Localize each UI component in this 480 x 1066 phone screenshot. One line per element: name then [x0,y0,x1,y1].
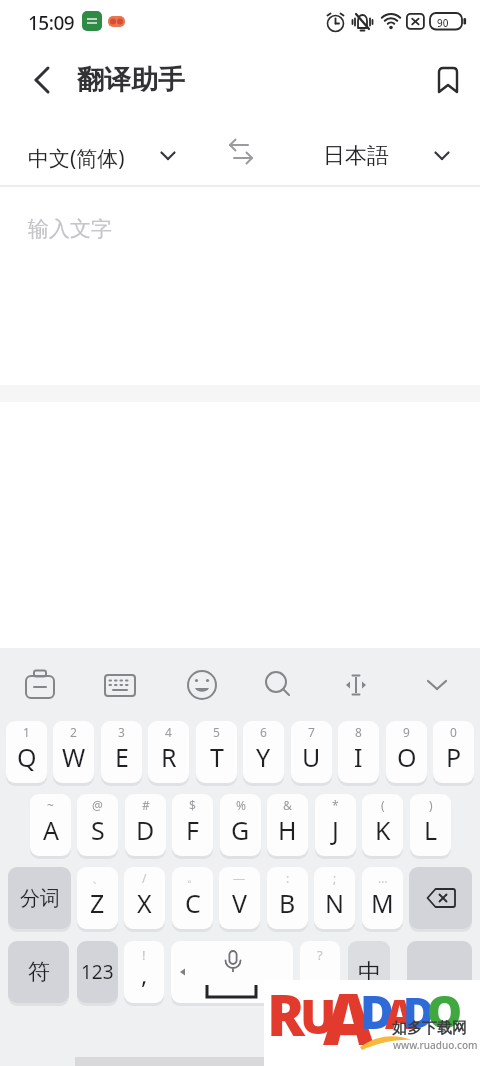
staticText: 9 [403,724,410,740]
button[interactable]: 0 [433,721,474,783]
staticText: 6 [260,724,267,740]
staticText: 123 [81,959,114,985]
button[interactable]: ; [314,867,355,929]
staticText: 15:09 [28,10,75,36]
button[interactable]: # [125,794,166,856]
staticText: — [233,870,246,886]
button[interactable]: ) [410,794,451,856]
staticText: A [323,970,374,1056]
staticText: A [43,813,59,847]
staticText: ? [317,946,323,964]
staticText: 7 [308,724,315,740]
staticText: V [232,886,248,920]
staticText: & [283,797,292,813]
button[interactable]: / [124,867,165,929]
button[interactable]: 4 [148,721,189,783]
staticText: 8 [355,724,362,740]
staticText: 输入文字 [28,216,112,242]
staticText: 2 [70,724,77,740]
staticText: ! [142,946,146,964]
staticText: 中文(简体) [28,144,125,173]
staticText: ; [333,870,337,886]
staticText: O [397,740,417,774]
staticText: S [91,813,105,847]
staticText: T [210,740,224,774]
staticText: K [375,813,391,847]
staticText: 5 [213,724,220,740]
button[interactable] [407,941,472,1003]
staticText: R [267,976,305,1052]
staticText: U [300,983,337,1048]
staticText: … [378,870,388,886]
staticText: 符 [28,958,50,986]
staticText: Y [256,740,271,774]
staticText: ) [429,797,433,813]
button[interactable]: 2 [53,721,94,783]
button[interactable]: 3 [101,721,142,783]
button[interactable]: 分词 [8,867,71,929]
staticText: % [236,797,246,813]
button[interactable]: 5 [196,721,237,783]
button[interactable] [103,667,137,703]
staticText: D [360,980,394,1043]
staticText: I [354,740,363,774]
staticText: 日本語 [323,142,389,170]
button[interactable] [185,667,219,703]
button[interactable]: ~ [30,794,71,856]
button[interactable]: ? [300,941,340,1003]
button[interactable] [409,867,472,929]
button[interactable] [430,60,466,100]
button[interactable]: 日本語 [300,128,480,180]
button[interactable]: 1 [6,721,47,783]
staticText: / [142,870,147,886]
staticText: ~ [47,797,54,813]
button[interactable]: 6 [243,721,284,783]
button[interactable]: … [362,867,403,929]
staticText: 1 [23,724,30,740]
staticText: 、 [92,870,104,885]
staticText: 3 [118,724,125,740]
staticText: J [332,813,339,847]
staticText: 如多下载网 [392,1019,467,1038]
staticText: 中 [358,958,381,987]
button[interactable] [23,667,57,703]
button[interactable]: 、 [77,867,118,929]
staticText: C [185,886,201,920]
button[interactable] [261,667,295,703]
staticText: Z [90,886,105,920]
staticText: # [142,797,150,813]
button[interactable] [24,62,60,98]
staticText: R [161,740,177,774]
staticText: O [427,981,463,1041]
button[interactable]: * [315,794,356,856]
button[interactable] [171,941,293,1003]
button[interactable]: 8 [338,721,379,783]
button[interactable] [339,667,373,703]
button[interactable]: % [220,794,261,856]
staticText: 0 [450,724,457,740]
staticText: X [137,886,152,920]
button[interactable]: 。 [172,867,213,929]
staticText: U [302,740,321,774]
button[interactable]: 9 [386,721,427,783]
button[interactable]: 符 [8,941,69,1003]
staticText: $ [189,797,196,813]
staticText: G [231,813,250,847]
staticText: D [136,813,155,847]
button[interactable]: $ [172,794,213,856]
button[interactable]: 中文(简体) [0,128,220,180]
button[interactable]: 123 [77,941,118,1003]
staticText: B [279,886,296,920]
button[interactable] [222,134,262,174]
staticText: W [62,740,86,774]
button[interactable] [420,667,454,703]
button[interactable]: — [219,867,260,929]
button[interactable]: @ [77,794,118,856]
button[interactable]: ! [124,941,164,1003]
button[interactable]: ( [362,794,403,856]
staticText: M [371,886,394,920]
button[interactable]: & [267,794,308,856]
button[interactable]: : [267,867,308,929]
button[interactable]: 中 [348,941,390,1003]
button[interactable]: 7 [291,721,332,783]
